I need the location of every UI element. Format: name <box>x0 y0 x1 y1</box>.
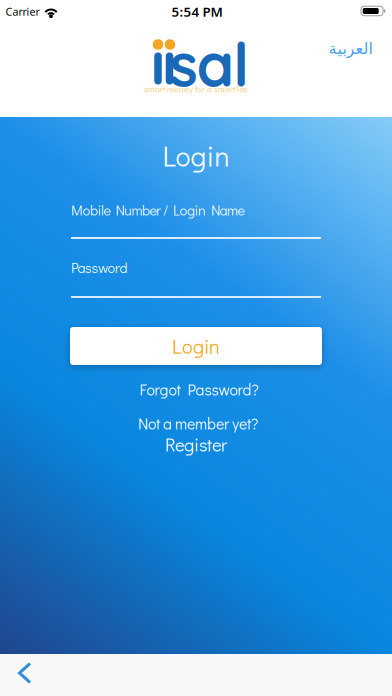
staticText: Forgot Password? <box>139 379 258 400</box>
staticText: Carrier <box>5 4 39 19</box>
button[interactable]: Forgot Password? <box>139 379 258 400</box>
staticText: العربية <box>328 39 372 58</box>
button[interactable]: Register <box>165 433 227 456</box>
staticText: Mobile Number / Login Name <box>71 201 244 219</box>
staticText: 5:54 PM <box>171 3 222 20</box>
staticText: sal <box>169 26 249 101</box>
button[interactable]: العربية <box>328 39 372 58</box>
staticText: Login <box>162 137 229 174</box>
staticText: Not a member yet? <box>138 413 258 434</box>
button[interactable]: Login <box>70 327 322 365</box>
staticText: smart money for a smart life <box>144 83 248 95</box>
button[interactable] <box>17 662 33 684</box>
staticText: Login <box>172 333 220 359</box>
staticText: Register <box>165 433 227 456</box>
staticText: Password <box>71 258 127 277</box>
